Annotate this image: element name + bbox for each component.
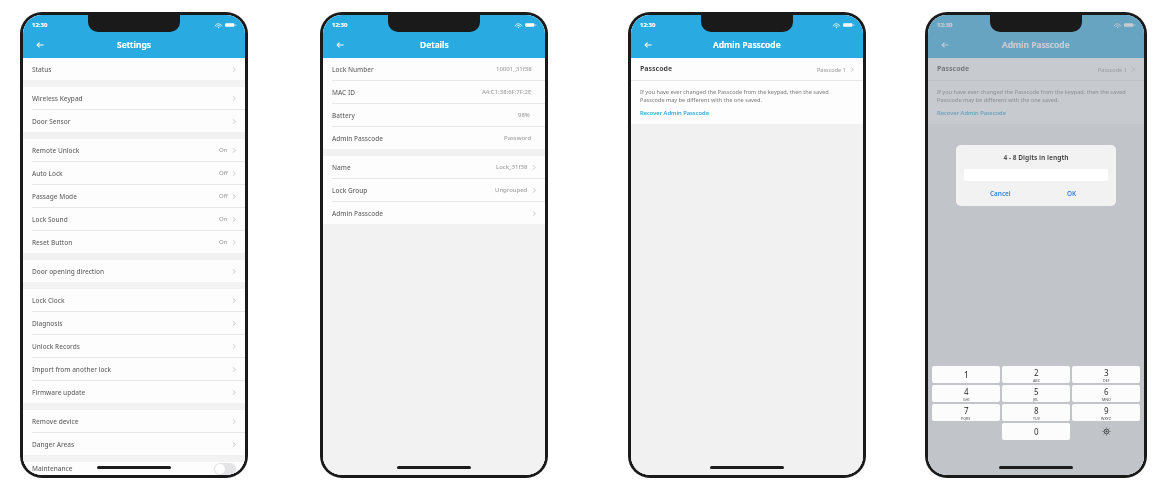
staticText: 9 [1104, 405, 1109, 416]
button[interactable]: 9 [1072, 404, 1140, 421]
button[interactable]: MAC ID [323, 81, 545, 104]
staticText: Lock Sound [32, 215, 68, 224]
button[interactable]: Auto Lock [23, 162, 245, 185]
button[interactable]: Recover Admin Passcode [640, 109, 709, 117]
button[interactable]: Door Sensor [23, 110, 245, 132]
staticText: PQRS [961, 416, 971, 421]
button[interactable]: 6 [1072, 385, 1140, 402]
button[interactable]: 4 [932, 385, 1000, 402]
button[interactable]: 8 [1002, 404, 1070, 421]
staticText: Admin Passcode [1002, 39, 1070, 51]
staticText: If you have ever changed the Passcode fr… [937, 88, 1135, 104]
staticText: Passcode 1 [817, 66, 846, 73]
button[interactable]: Cancel [964, 189, 1036, 198]
staticText: WXYZ [1101, 416, 1111, 421]
staticText: Lock Clock [32, 296, 65, 305]
staticText: Remove device [32, 417, 79, 426]
staticText: 10001_31f38 [496, 65, 532, 73]
staticText: DEF [1103, 378, 1110, 383]
staticText: Battery [332, 111, 355, 120]
staticText: MNO [1102, 397, 1111, 402]
staticText: Passcode [937, 64, 970, 74]
button[interactable]: Lock Clock [23, 289, 245, 312]
staticText: Passcode 1 [1098, 66, 1127, 73]
button[interactable]: Status [23, 58, 245, 80]
staticText: 1 [964, 369, 969, 380]
button[interactable]: Danger Areas [23, 433, 245, 455]
staticText: Wireless Keypad [32, 94, 83, 103]
staticText: 4 [964, 386, 969, 397]
staticText: OK [1067, 189, 1077, 198]
button[interactable]: 7 [932, 404, 1000, 421]
button[interactable]: Passcode [937, 58, 1135, 80]
staticText: 6 [1104, 386, 1109, 397]
button[interactable]: Recover Admin Passcode [937, 109, 1006, 117]
button[interactable]: Diagnosis [23, 312, 245, 335]
button[interactable]: Back [938, 38, 952, 52]
staticText: GHI [963, 397, 970, 402]
staticText: 2 [1034, 367, 1039, 378]
button[interactable]: Admin Passcode [323, 127, 545, 149]
staticText: Password [504, 134, 532, 142]
staticText: Lock Number [332, 65, 374, 74]
staticText: Lock_31f38 [496, 163, 528, 171]
button[interactable]: Door opening direction [23, 260, 245, 282]
staticText: A4:C1:38:6F:7F:2E [482, 88, 532, 96]
button[interactable]: Wireless Keypad [23, 87, 245, 110]
staticText: 3 [1104, 367, 1109, 378]
staticText: 12:30 [640, 21, 656, 29]
button[interactable]: Name [323, 156, 545, 179]
button[interactable]: Reset Button [23, 231, 245, 253]
staticText: Door opening direction [32, 267, 105, 276]
staticText: Off [219, 169, 228, 177]
button[interactable]: Battery [323, 104, 545, 127]
staticText: Off [219, 192, 228, 200]
button[interactable]: Remote Unlock [23, 139, 245, 162]
staticText: TUV [1033, 416, 1040, 421]
button[interactable]: Keyboard settings [1072, 423, 1140, 440]
staticText: Cancel [990, 189, 1011, 198]
staticText: Auto Lock [32, 169, 63, 178]
staticText: Recover Admin Passcode [937, 109, 1006, 117]
staticText: Import from another lock [32, 365, 112, 374]
staticText: Firmware update [32, 388, 86, 397]
staticText: MAC ID [332, 88, 355, 97]
staticText: Admin Passcode [332, 134, 383, 143]
staticText: Admin Passcode [332, 209, 383, 218]
button[interactable]: Back [33, 38, 47, 52]
staticText: On [219, 146, 228, 154]
staticText: 12:30 [937, 21, 953, 29]
button[interactable]: 1 [932, 366, 1000, 383]
staticText: Ungrouped [495, 186, 528, 194]
button[interactable]: Import from another lock [23, 358, 245, 381]
button[interactable]: 0 [1002, 423, 1070, 440]
staticText: Door Sensor [32, 117, 71, 126]
button[interactable]: 5 [1002, 385, 1070, 402]
button[interactable]: 2 [1002, 366, 1070, 383]
staticText: Passcode [640, 64, 673, 74]
button[interactable]: Back [333, 38, 347, 52]
button[interactable]: Back [641, 38, 655, 52]
button[interactable]: Unlock Records [23, 335, 245, 358]
button[interactable]: 3 [1072, 366, 1140, 383]
staticText: ABC [1033, 378, 1040, 383]
button[interactable]: Lock Number [323, 58, 545, 81]
staticText: Diagnosis [32, 319, 63, 328]
button[interactable]: Lock Sound [23, 208, 245, 231]
staticText: Status [32, 65, 52, 74]
staticText: 0 [1034, 426, 1039, 437]
staticText: Recover Admin Passcode [640, 109, 709, 117]
button[interactable]: Lock Group [323, 179, 545, 202]
staticText: Unlock Records [32, 342, 80, 351]
button[interactable]: Firmware update [23, 381, 245, 403]
button[interactable]: Maintenance [32, 462, 236, 475]
staticText: If you have ever changed the Passcode fr… [640, 88, 854, 104]
button[interactable]: Admin Passcode [323, 202, 545, 224]
button[interactable]: Passage Mode [23, 185, 245, 208]
button[interactable]: Remove device [23, 410, 245, 433]
button[interactable]: OK [1036, 189, 1108, 198]
button[interactable]: Passcode [640, 58, 854, 80]
staticText: Remote Unlock [32, 146, 80, 155]
staticText: Settings [117, 39, 151, 51]
